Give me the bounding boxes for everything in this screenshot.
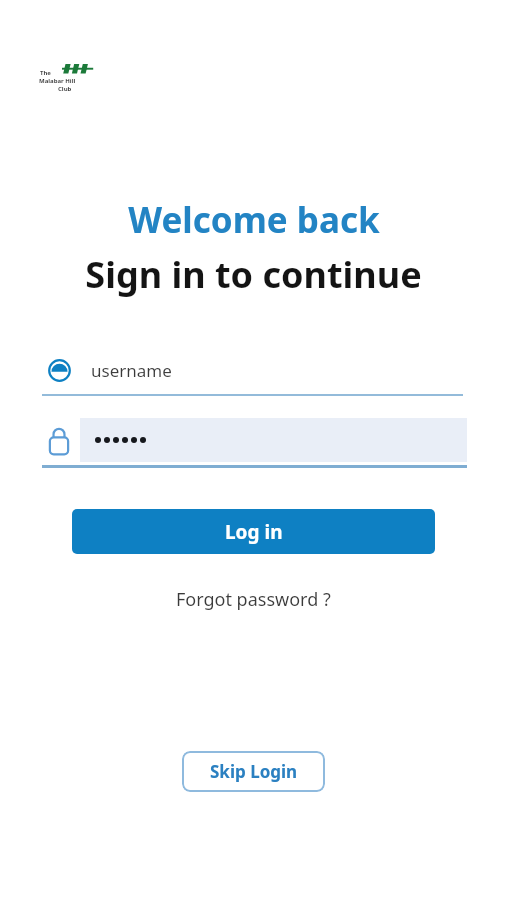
staticText: Malabar Hill [39, 77, 76, 85]
staticText: Welcome back [128, 196, 380, 244]
other: Account [48, 359, 71, 382]
button[interactable]: Account [42, 348, 463, 396]
button[interactable]: Log in [72, 509, 435, 554]
staticText: The [40, 69, 51, 77]
staticText: Skip Login [210, 760, 298, 783]
staticText: username [91, 359, 172, 382]
button[interactable]: Password [42, 418, 467, 468]
staticText: Log in [225, 519, 283, 545]
button[interactable]: Skip Login [182, 751, 325, 792]
staticText: Sign in to continue [85, 250, 422, 299]
staticText: Club [58, 85, 72, 93]
button[interactable]: Forgot password ? [166, 583, 341, 616]
staticText: Forgot password ? [176, 587, 331, 612]
other: Password [47, 423, 71, 457]
